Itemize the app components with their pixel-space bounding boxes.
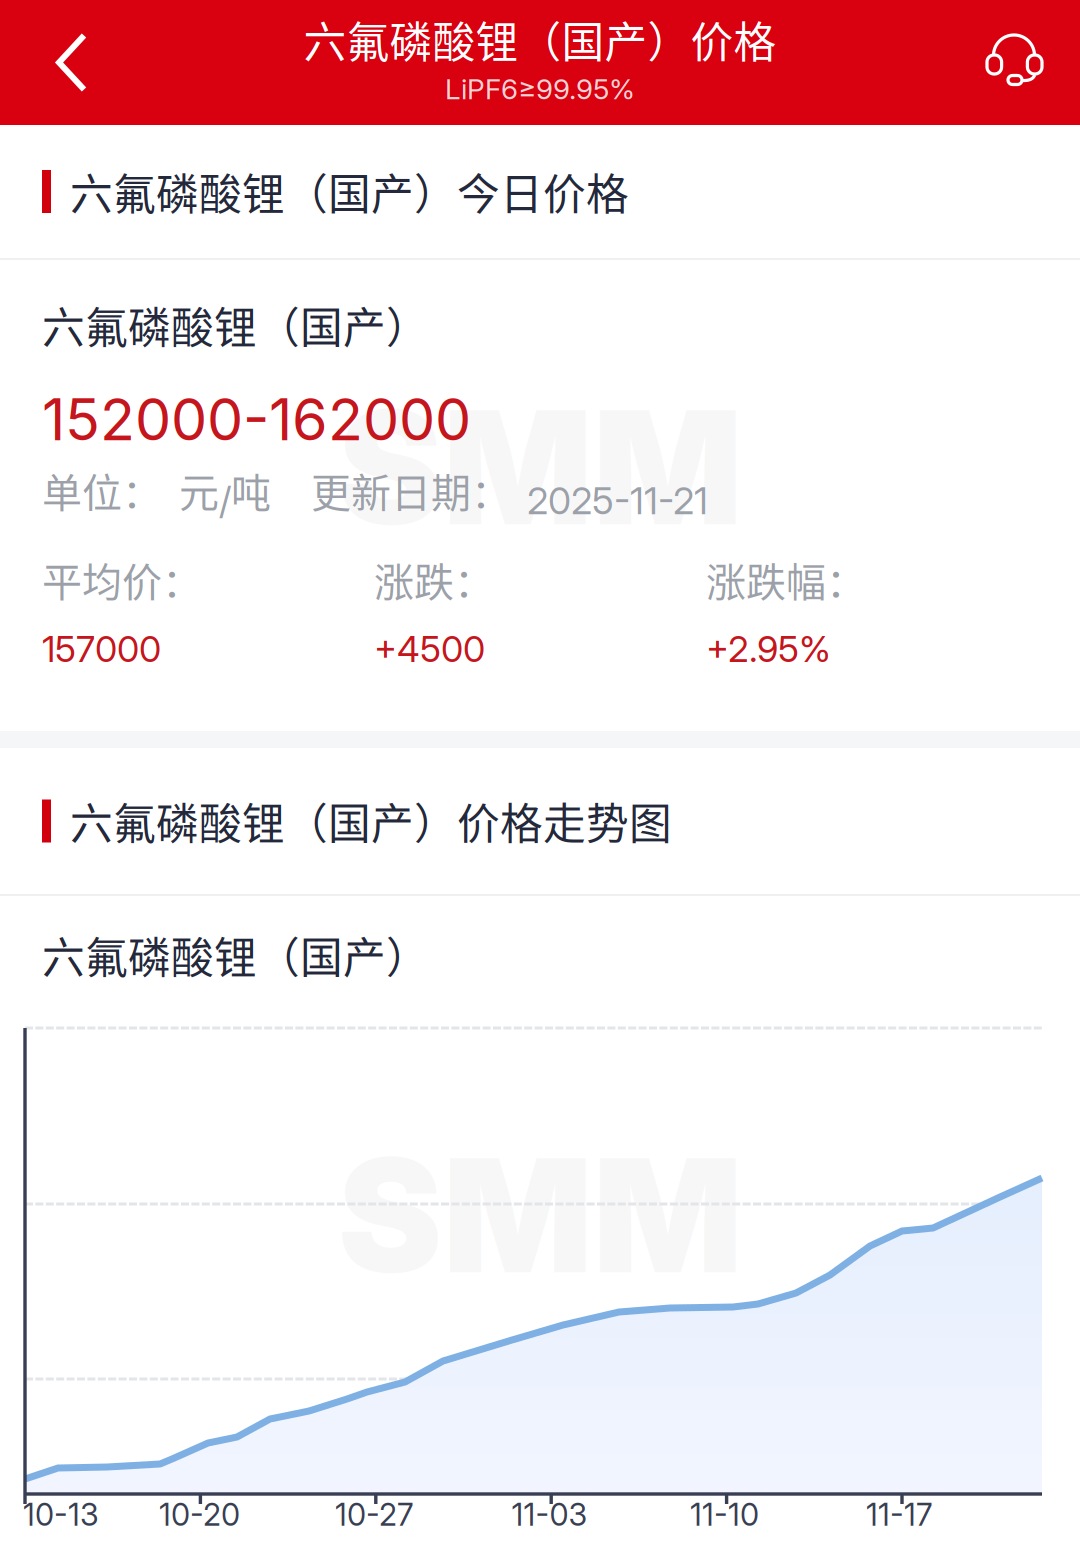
staticText: 六氟磷酸锂（国产）价格 [303,9,776,70]
button[interactable]: 在线客服 [930,0,1080,125]
staticText: 152000-162000 [42,385,471,454]
staticText: 六氟磷酸锂（国产） [42,924,429,986]
staticText: LiPF6≥99.95% [445,72,635,106]
staticText: 涨跌： [374,550,494,608]
staticText: 157000 [42,627,161,671]
staticText: 10-27 [335,1496,414,1533]
staticText: 六氟磷酸锂（国产） [42,294,429,356]
staticText: 平均价： [42,550,202,608]
staticText: 10-13 [23,1496,99,1533]
staticText: +4500 [374,627,485,671]
staticText: 单位： [42,461,162,519]
staticText: 涨跌幅： [706,550,866,608]
staticText: 11-10 [690,1496,759,1533]
staticText: 更新日期： [311,461,511,519]
staticText: 11-17 [866,1496,933,1533]
staticText: +2.95% [706,627,831,671]
staticText: SMM [337,1120,742,1310]
staticText: 10-20 [159,1496,240,1533]
staticText: / [219,478,231,523]
button[interactable]: 返回 [0,0,150,125]
staticText: 11-03 [511,1496,587,1533]
staticText: 元 [179,461,219,519]
staticText: 2025-11-21 [527,478,708,523]
staticText: 六氟磷酸锂（国产）今日价格 [70,161,629,222]
staticText: 六氟磷酸锂（国产）价格走势图 [70,790,672,852]
staticText: 吨 [231,461,271,519]
staticText: SMM [337,372,742,562]
